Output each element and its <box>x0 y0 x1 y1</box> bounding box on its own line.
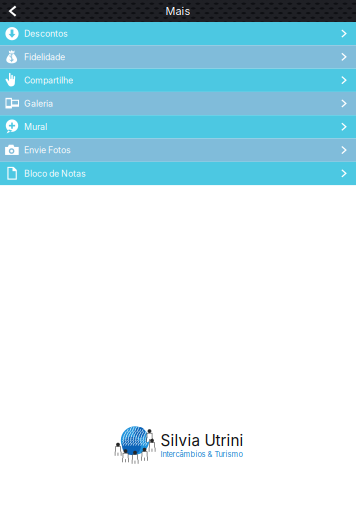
staticText: Galeria <box>24 98 53 109</box>
button[interactable]: Galeria <box>0 92 356 115</box>
button[interactable]: Envie Fotos <box>0 138 356 162</box>
button[interactable]: Back <box>0 0 36 22</box>
staticText: Mural <box>24 121 47 132</box>
button[interactable]: Compartilhe <box>0 69 356 92</box>
staticText: Intercâmbios & Turismo <box>160 450 242 459</box>
staticText: Compartilhe <box>24 75 73 85</box>
button[interactable]: Bloco de Notas <box>0 162 356 185</box>
staticText: Descontos <box>24 28 68 39</box>
staticText: Bloco de Notas <box>24 168 86 179</box>
staticText: Envie Fotos <box>24 145 71 155</box>
button[interactable]: Fidelidade <box>0 45 356 69</box>
staticText: Mais <box>165 4 190 18</box>
button[interactable]: Descontos <box>0 22 356 45</box>
staticText: Fidelidade <box>24 52 65 62</box>
staticText: Silvia Utrini <box>160 431 243 450</box>
button[interactable]: Mural <box>0 115 356 138</box>
